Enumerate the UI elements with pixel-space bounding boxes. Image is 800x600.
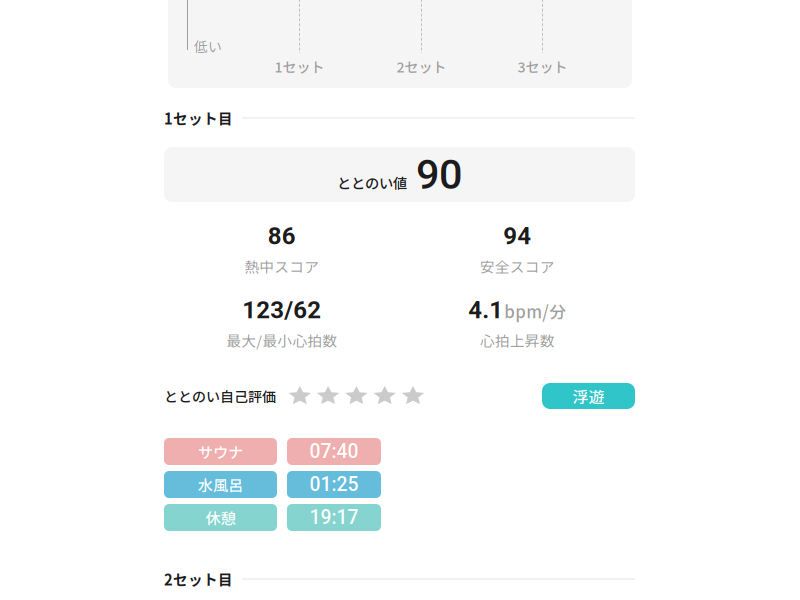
button[interactable]: 01:25 xyxy=(287,471,381,498)
staticText: 94 xyxy=(503,222,531,250)
staticText: 安全スコア xyxy=(480,255,555,277)
button[interactable]: サウナ xyxy=(164,438,277,465)
button[interactable]: 2 つ星に設定 xyxy=(316,386,340,406)
button[interactable]: 5 つ星に設定 xyxy=(401,386,425,406)
staticText: 4.1 xyxy=(468,296,503,324)
button[interactable]: 19:17 xyxy=(287,504,381,531)
staticText: ととのい自己評価 xyxy=(164,386,276,406)
staticText: 1セット目 xyxy=(164,107,233,129)
button[interactable]: 3 つ星に設定 xyxy=(345,386,368,406)
button[interactable]: 浮遊 xyxy=(542,383,635,409)
staticText: 123/62 xyxy=(242,296,321,324)
staticText: 最大/最小心拍数 xyxy=(226,329,337,351)
staticText: 07:40 xyxy=(309,440,358,463)
button[interactable]: 4 つ星に設定 xyxy=(373,386,396,406)
staticText: 19:17 xyxy=(309,506,358,529)
staticText: 86 xyxy=(268,222,296,250)
staticText: 休憩 xyxy=(205,506,235,528)
button[interactable]: 休憩 xyxy=(164,504,277,531)
staticText: 2セット目 xyxy=(164,568,233,590)
staticText: サウナ xyxy=(198,440,243,462)
staticText: ととのい値 xyxy=(337,172,407,193)
button[interactable]: 1 つ星に設定 xyxy=(288,386,312,406)
staticText: 熱中スコア xyxy=(244,255,319,277)
staticText: 水風呂 xyxy=(198,473,243,495)
button[interactable]: 水風呂 xyxy=(164,471,277,498)
staticText: 浮遊 xyxy=(572,384,604,407)
staticText: 90 xyxy=(416,150,462,199)
staticText: 3セット xyxy=(517,56,567,76)
button[interactable]: 07:40 xyxy=(287,438,381,465)
staticText: 01:25 xyxy=(309,473,358,496)
staticText: 2セット xyxy=(396,56,446,76)
staticText: 低い xyxy=(194,36,222,56)
staticText: bpm/分 xyxy=(504,299,566,323)
staticText: 1セット xyxy=(274,56,324,76)
staticText: 心拍上昇数 xyxy=(480,329,555,351)
